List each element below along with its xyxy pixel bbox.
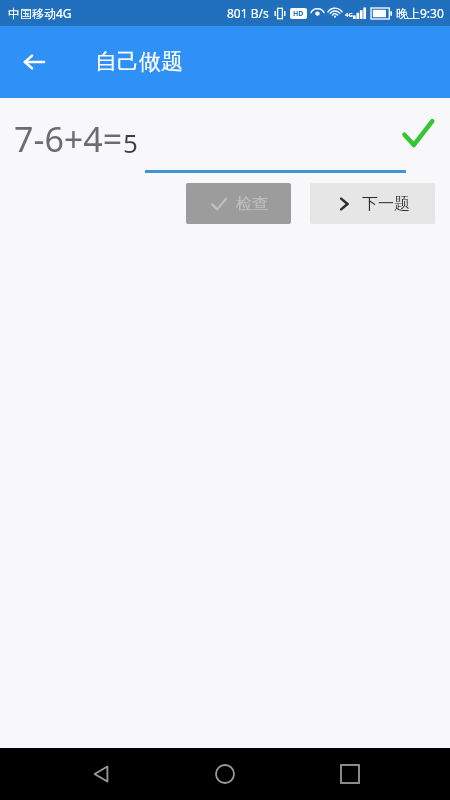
staticText: 801 B/s (227, 5, 269, 21)
staticText: 晚上9:30 (396, 5, 444, 21)
staticText: 7-6+4= (14, 116, 123, 162)
button[interactable]: Back (10, 38, 58, 86)
staticText: 中国移动4G (8, 5, 72, 21)
button[interactable]: Home (201, 750, 249, 798)
staticText: 自己做题 (95, 48, 183, 76)
other: Correct (396, 112, 440, 156)
button[interactable]: 下一题 (310, 183, 435, 224)
staticText: 5 (123, 125, 138, 160)
button[interactable]: Back (77, 750, 125, 798)
staticText: 检查 (236, 194, 268, 214)
staticText: HD (293, 9, 304, 19)
button[interactable]: Recents (326, 750, 374, 798)
staticText: 4G (345, 11, 353, 19)
staticText: 下一题 (362, 194, 410, 214)
button[interactable]: 检查 (186, 183, 291, 224)
